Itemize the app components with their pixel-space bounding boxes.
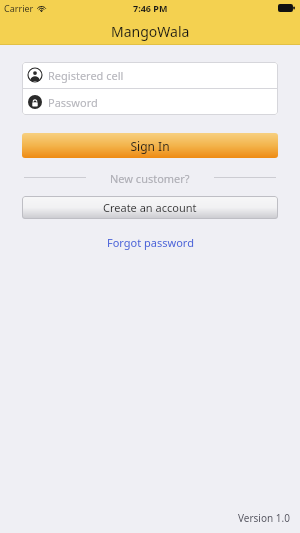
button[interactable]: Create an account	[22, 196, 278, 219]
staticText: 7:46 PM	[133, 2, 168, 14]
button[interactable]: Forgot password	[99, 233, 202, 252]
staticText: Forgot password	[107, 235, 194, 250]
staticText: Carrier	[4, 2, 34, 14]
staticText: Version 1.0	[238, 511, 290, 525]
staticText: New customer?	[110, 171, 190, 183]
staticText: Password	[48, 95, 98, 110]
button[interactable]: Password	[22, 89, 278, 115]
staticText: Sign In	[130, 138, 170, 154]
staticText: MangoWala	[111, 22, 190, 41]
button[interactable]: Sign In	[22, 133, 278, 158]
staticText: Registered cell	[48, 68, 124, 83]
staticText: Create an account	[103, 200, 197, 215]
button[interactable]: Registered cell	[22, 62, 278, 88]
